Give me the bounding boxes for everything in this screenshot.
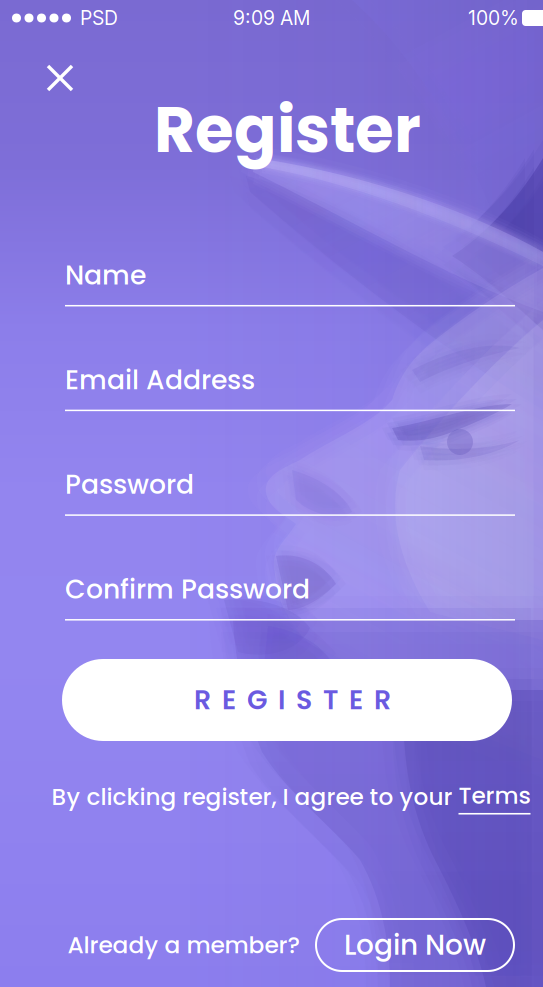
button[interactable]: Login Now xyxy=(316,919,514,971)
staticText: 100% xyxy=(468,6,519,30)
staticText: Register xyxy=(154,86,421,174)
staticText: Name xyxy=(65,256,146,294)
button[interactable]: Name xyxy=(65,256,515,306)
staticText: By clicking register, I agree to your xyxy=(51,781,458,813)
staticText: Email Address xyxy=(65,361,255,398)
staticText: Confirm Password xyxy=(65,570,310,608)
staticText: REGISTER xyxy=(194,681,391,719)
button[interactable]: Close xyxy=(38,56,82,100)
staticText: Login Now xyxy=(344,925,486,965)
staticText: Terms xyxy=(458,779,530,812)
staticText: PSD xyxy=(80,6,118,30)
button[interactable]: Email Address xyxy=(65,361,515,411)
staticText: 9:09 AM xyxy=(233,6,310,30)
button[interactable]: REGISTER xyxy=(62,659,512,741)
staticText: Already a member? xyxy=(67,929,300,961)
staticText: Password xyxy=(65,466,194,503)
button[interactable]: Confirm Password xyxy=(65,570,515,620)
button[interactable]: Password xyxy=(65,466,515,516)
button[interactable]: By clicking register, I agree to your xyxy=(51,779,530,815)
